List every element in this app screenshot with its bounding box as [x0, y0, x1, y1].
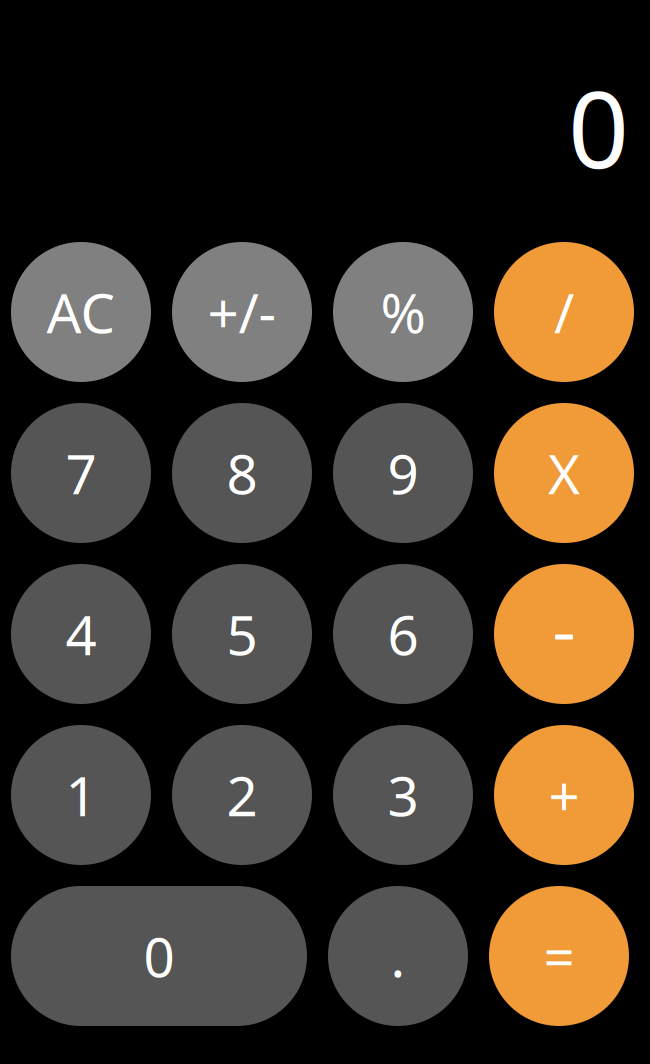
button[interactable]: 2 [172, 725, 312, 865]
button[interactable]: Decimal point [328, 886, 468, 1026]
button[interactable]: Divide [494, 242, 634, 382]
button[interactable]: Multiply [494, 403, 634, 543]
staticText: 3 [387, 759, 418, 831]
staticText: 7 [65, 437, 96, 509]
button[interactable]: 7 [11, 403, 151, 543]
staticText: / [554, 276, 574, 348]
staticText: X [548, 437, 580, 509]
staticText: % [380, 276, 425, 348]
staticText: 0 [568, 56, 629, 198]
button[interactable]: 8 [172, 403, 312, 543]
button[interactable]: Plus [494, 725, 634, 865]
staticText: . [390, 920, 405, 992]
staticText: 0 [143, 920, 174, 992]
button[interactable]: 6 [333, 564, 473, 704]
staticText: + [548, 759, 579, 831]
staticText: 5 [226, 598, 257, 670]
staticText: = [543, 920, 574, 992]
button[interactable]: Percent [333, 242, 473, 382]
staticText: 9 [387, 437, 418, 509]
staticText: AC [46, 276, 115, 348]
button[interactable]: 9 [333, 403, 473, 543]
button[interactable]: All clear [11, 242, 151, 382]
button[interactable]: Equals [489, 886, 629, 1026]
staticText: 8 [226, 437, 257, 509]
staticText: 4 [65, 598, 96, 670]
button[interactable]: Minus [494, 564, 634, 704]
button[interactable]: 0 [11, 886, 307, 1026]
staticText: 2 [226, 759, 257, 831]
button[interactable]: 4 [11, 564, 151, 704]
button[interactable]: 5 [172, 564, 312, 704]
staticText: 6 [387, 598, 418, 670]
staticText: +/- [207, 276, 276, 348]
button[interactable]: 3 [333, 725, 473, 865]
staticText: 1 [65, 759, 96, 831]
button[interactable]: Plus minus [172, 242, 312, 382]
button[interactable]: 1 [11, 725, 151, 865]
